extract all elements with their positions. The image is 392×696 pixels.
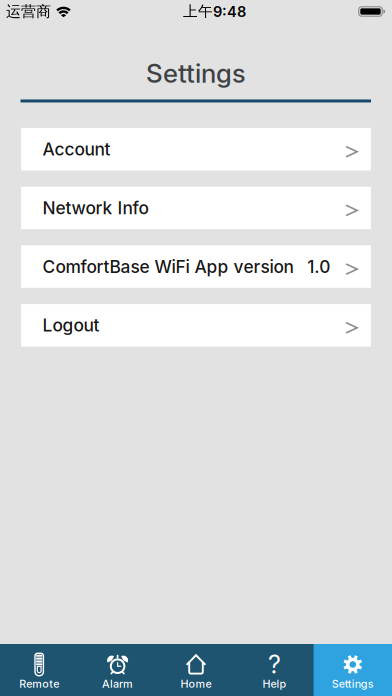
- button[interactable]: Account: [21, 128, 371, 170]
- button[interactable]: Alarm: [78, 644, 157, 696]
- staticText: 运营商: [6, 2, 51, 21]
- button[interactable]: Settings: [314, 644, 392, 696]
- button[interactable]: Logout: [21, 304, 371, 347]
- staticText: ?: [268, 649, 281, 680]
- button[interactable]: Home: [157, 644, 235, 696]
- staticText: Logout: [42, 315, 99, 336]
- button[interactable]: Remote: [0, 644, 78, 696]
- staticText: Account: [42, 139, 110, 160]
- staticText: Help: [262, 677, 286, 690]
- staticText: ComfortBase WiFi App version: [42, 256, 293, 277]
- staticText: 1.0: [307, 256, 330, 277]
- button[interactable]: ?: [235, 644, 314, 696]
- staticText: Home: [180, 677, 211, 690]
- staticText: Settings: [146, 57, 246, 89]
- button[interactable]: Network Info: [21, 187, 371, 229]
- staticText: Alarm: [102, 677, 133, 690]
- staticText: Remote: [19, 677, 59, 690]
- staticText: 上午9:48: [183, 2, 246, 21]
- staticText: Network Info: [42, 197, 148, 218]
- button[interactable]: ComfortBase WiFi App version: [21, 245, 371, 288]
- staticText: Settings: [332, 677, 374, 690]
